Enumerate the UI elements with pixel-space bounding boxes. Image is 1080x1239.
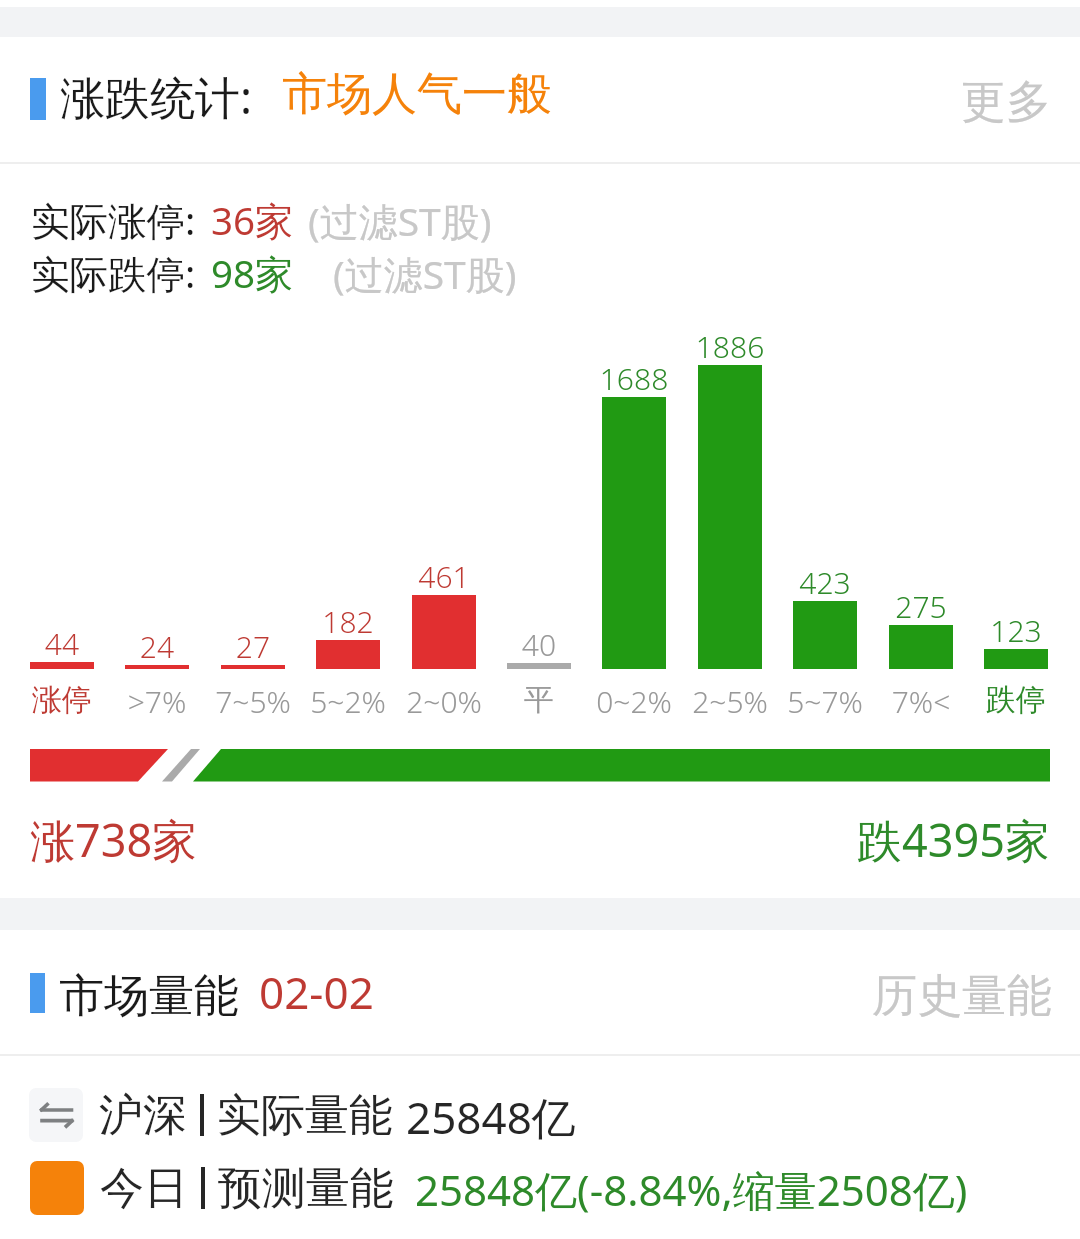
staticText: 2~0% [382, 681, 506, 722]
staticText: 2~5% [668, 681, 792, 722]
staticText: 实际涨停: [31, 194, 206, 247]
staticText: 跌4395家 [857, 809, 1050, 870]
staticText: 461 [372, 556, 516, 597]
button[interactable]: 切换市场 [29, 1087, 576, 1143]
staticText: 40 [467, 624, 611, 665]
staticText: 市场量能 [59, 968, 239, 1025]
staticText: 275 [849, 586, 993, 627]
other: 切换市场 [29, 1088, 83, 1142]
staticText: 25848亿 [406, 1087, 576, 1143]
staticText: 涨跌统计: [60, 66, 253, 127]
staticText: 27 [181, 626, 325, 667]
staticText: 7%< [859, 681, 983, 722]
staticText: 平 [477, 681, 601, 719]
button[interactable]: 市场量能 [0, 930, 1080, 1054]
staticText: 实际量能 [217, 1088, 393, 1143]
staticText: 1886 [658, 326, 802, 367]
staticText: 98家 [211, 247, 294, 300]
staticText: 沪深 [99, 1088, 187, 1143]
staticText: 0~2% [572, 681, 696, 722]
staticText: 涨停 [0, 681, 124, 719]
staticText: 44 [0, 623, 134, 664]
staticText: 实际跌停: [31, 247, 206, 300]
staticText: 423 [753, 562, 897, 603]
staticText: 今日 [100, 1161, 188, 1215]
staticText: 5~2% [286, 681, 410, 722]
staticText: 历史量能 [872, 968, 1052, 1025]
staticText: (过滤ST股) [333, 247, 517, 300]
staticText: >7% [95, 681, 219, 722]
staticText: 24 [85, 626, 229, 667]
button[interactable]: 涨跌统计: [0, 36, 1080, 162]
staticText: 36家 [211, 194, 294, 247]
button[interactable]: 今日 [30, 1161, 968, 1215]
staticText: 02-02 [259, 962, 374, 1022]
staticText: 123 [944, 610, 1080, 651]
staticText: (过滤ST股) [308, 194, 492, 247]
staticText: 预测量能 [218, 1161, 394, 1215]
staticText: 7~5% [191, 681, 315, 722]
staticText: 市场人气一般 [282, 66, 552, 123]
staticText: 1688 [562, 358, 706, 399]
staticText: 5~7% [763, 681, 887, 722]
staticText: 跌停 [954, 681, 1078, 719]
staticText: 182 [276, 601, 420, 642]
staticText: 更多 [961, 74, 1051, 131]
staticText: 涨738家 [30, 809, 198, 870]
staticText: 25848亿(-8.84%,缩量2508亿) [415, 1161, 968, 1215]
